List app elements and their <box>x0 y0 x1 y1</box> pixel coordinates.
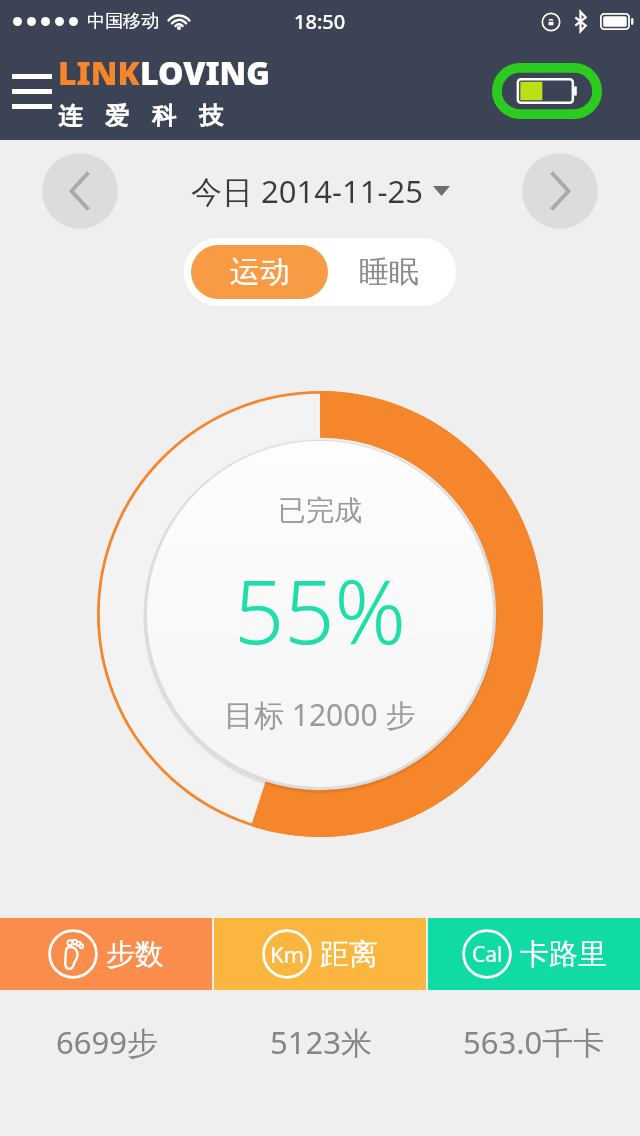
staticText: 今日 2014-11-25 <box>191 170 423 212</box>
button[interactable]: Next day <box>522 153 598 229</box>
staticText: 55% <box>234 550 406 670</box>
staticText: 18:50 <box>294 8 346 35</box>
staticText: 睡眠 <box>359 253 419 291</box>
staticText: 5123米 <box>270 1021 372 1063</box>
staticText: LINK <box>58 51 140 95</box>
staticText: 连 爱 科 技 <box>58 98 227 131</box>
button[interactable]: 睡眠 <box>328 245 449 299</box>
button[interactable]: Menu <box>8 64 56 118</box>
staticText: 中国移动 <box>87 10 159 33</box>
staticText: 距离 <box>320 936 378 973</box>
staticText: Cal <box>472 940 503 969</box>
staticText: 运动 <box>230 253 290 291</box>
button[interactable]: Km <box>214 918 426 990</box>
staticText: 步数 <box>106 936 164 973</box>
staticText: 目标 12000 步 <box>224 694 416 735</box>
staticText: LOVING <box>140 51 270 95</box>
staticText: 已完成 <box>278 493 362 528</box>
staticText: Km <box>270 939 305 969</box>
staticText: 6699步 <box>56 1021 158 1063</box>
button[interactable]: Cal <box>428 918 640 990</box>
button[interactable]: Device battery <box>492 63 602 119</box>
staticText: 563.0千卡 <box>463 1021 605 1063</box>
button[interactable]: 运动 <box>191 245 328 299</box>
button[interactable]: 步数 <box>0 918 212 990</box>
staticText: 卡路里 <box>520 936 607 973</box>
button[interactable]: Previous day <box>42 153 118 229</box>
button[interactable]: 今日 2014-11-25 <box>191 170 450 212</box>
